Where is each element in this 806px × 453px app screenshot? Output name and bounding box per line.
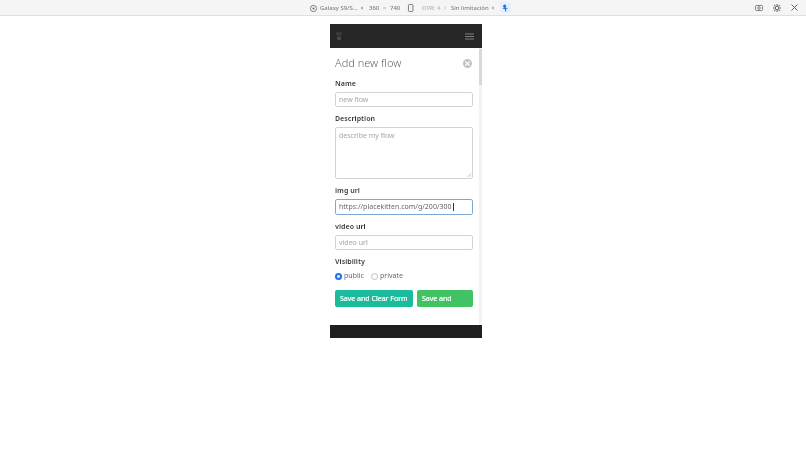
staticText: Add new flow <box>335 55 402 70</box>
staticText: × <box>383 4 387 12</box>
staticText: 740 <box>390 4 401 12</box>
staticText: Save and Close <box>422 294 468 304</box>
staticText: video url <box>339 238 368 248</box>
button[interactable]: https://placekitten.com/g/200/300 <box>335 199 473 215</box>
button[interactable]: Touch simulation <box>500 2 511 13</box>
staticText: 360 <box>369 4 380 12</box>
staticText: Visibility <box>335 257 365 267</box>
button[interactable]: video url <box>335 235 473 250</box>
staticText: Description <box>335 114 376 124</box>
staticText: Name <box>335 79 356 89</box>
button[interactable]: Settings <box>771 2 782 13</box>
staticText: DPR: 4 <box>422 4 441 12</box>
button[interactable]: Close dialog <box>461 57 473 69</box>
staticText: https://placekitten.com/g/200/300 <box>339 202 452 212</box>
staticText: img url <box>335 186 360 196</box>
button[interactable]: Home <box>333 29 347 43</box>
button[interactable]: new flow <box>335 92 473 107</box>
button[interactable]: Capture screenshot <box>753 2 764 13</box>
button[interactable]: Rotate <box>406 3 416 13</box>
button[interactable]: Device options <box>308 3 318 13</box>
staticText: new flow <box>339 95 369 105</box>
staticText: private <box>380 271 403 281</box>
button[interactable]: private <box>371 270 403 282</box>
staticText: video url <box>335 222 366 232</box>
staticText: public <box>344 271 364 281</box>
staticText: describe my flow <box>339 131 395 141</box>
button[interactable]: describe my flow <box>335 127 473 179</box>
button[interactable]: public <box>335 270 364 282</box>
staticText: Galaxy S9/S… <box>320 4 358 12</box>
staticText: Sin limitación <box>451 4 489 12</box>
button[interactable]: Save and Close <box>417 290 473 307</box>
button[interactable]: Menu <box>461 28 477 44</box>
button[interactable]: Save and Clear Form <box>335 290 413 307</box>
staticText: Save and Clear Form <box>340 294 408 304</box>
button[interactable]: Close <box>789 2 800 13</box>
